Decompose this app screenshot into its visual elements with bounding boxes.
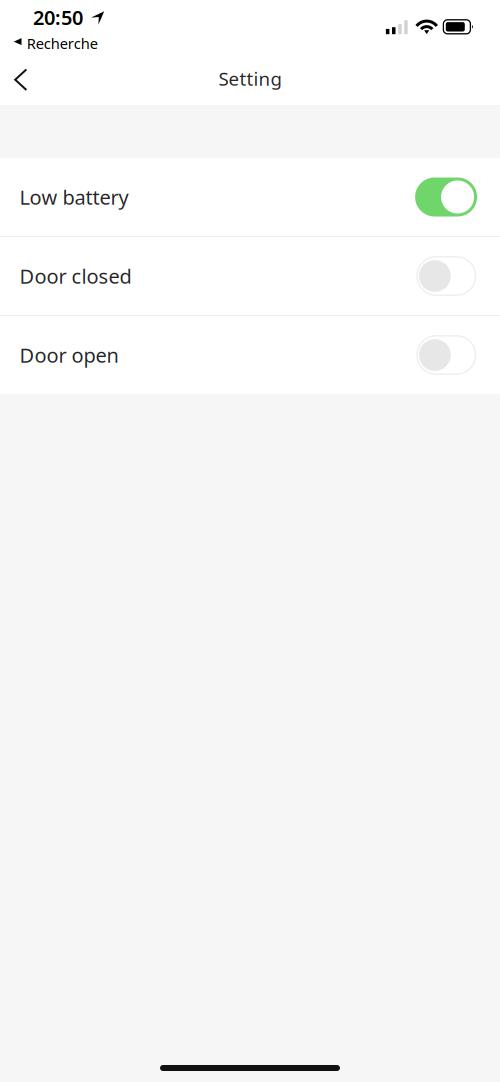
staticText: 20:50 bbox=[33, 4, 83, 31]
staticText: Low battery bbox=[19, 184, 128, 210]
button[interactable]: Door open bbox=[0, 316, 500, 394]
button[interactable]: Door closed bbox=[0, 237, 500, 315]
staticText: Setting bbox=[218, 66, 281, 91]
button[interactable]: Back bbox=[0, 52, 44, 105]
staticText: Door open bbox=[19, 342, 118, 368]
button[interactable]: Low battery bbox=[0, 158, 500, 236]
staticText: Recherche bbox=[27, 33, 98, 53]
staticText: Door closed bbox=[19, 263, 131, 289]
button[interactable]: Recherche bbox=[14, 33, 98, 53]
